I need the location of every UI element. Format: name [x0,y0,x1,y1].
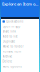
staticText: Share link [2,30,15,33]
staticText: Delete [2,60,12,63]
staticText: Add to list [2,35,17,38]
staticText: Move to folder [2,45,23,48]
staticText: Rename item [2,50,20,53]
staticText: Archive [2,55,12,58]
staticText: Open in app [2,25,20,28]
staticText: Explore an Item or Card [2,1,39,6]
staticText: Quick actions [6,20,23,23]
staticText: More options [2,65,21,68]
staticText: Duplicate [2,40,15,43]
